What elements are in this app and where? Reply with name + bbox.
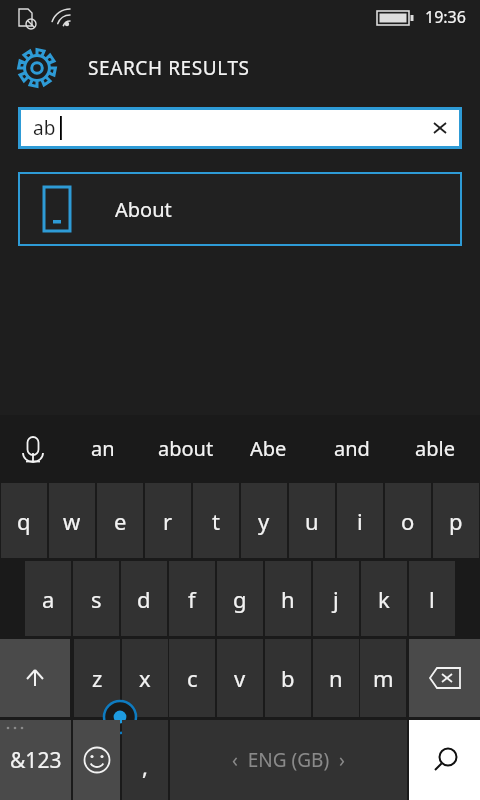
button[interactable]: y xyxy=(241,483,287,558)
button[interactable]: f xyxy=(169,561,215,636)
staticText: m xyxy=(373,663,394,693)
button[interactable]: k xyxy=(361,561,407,636)
staticText: i xyxy=(357,506,363,536)
button[interactable]: s xyxy=(73,561,119,636)
button[interactable]: u xyxy=(289,483,335,558)
staticText: About xyxy=(115,196,172,223)
staticText: about xyxy=(158,435,214,462)
button[interactable]: t xyxy=(193,483,239,558)
button[interactable]: Abe xyxy=(227,415,310,482)
button[interactable]: z xyxy=(74,639,120,717)
button[interactable]: &123 xyxy=(0,720,71,800)
staticText: p xyxy=(449,506,463,536)
staticText: n xyxy=(329,663,343,693)
button[interactable]: h xyxy=(265,561,311,636)
button[interactable]: a xyxy=(25,561,71,636)
button[interactable]: ‹ ENG (GB) › xyxy=(170,720,407,800)
button[interactable]: about xyxy=(144,415,227,482)
button[interactable]: d xyxy=(121,561,167,636)
button[interactable]: r xyxy=(145,483,191,558)
button[interactable]: c xyxy=(169,639,215,717)
button[interactable]: Backspace xyxy=(409,639,480,717)
button[interactable]: x xyxy=(122,639,168,717)
staticText: ‹ ENG (GB) › xyxy=(232,747,345,773)
staticText: c xyxy=(187,663,198,693)
button[interactable]: n xyxy=(313,639,359,717)
staticText: an xyxy=(91,435,115,462)
staticText: f xyxy=(188,584,196,614)
button[interactable]: and xyxy=(310,415,393,482)
staticText: b xyxy=(281,663,295,693)
button[interactable]: able xyxy=(393,415,476,482)
staticText: l xyxy=(429,584,435,614)
button[interactable]: w xyxy=(49,483,95,558)
button[interactable]: e xyxy=(97,483,143,558)
staticText: y xyxy=(258,506,270,536)
staticText: &123 xyxy=(10,746,62,775)
button[interactable]: ab xyxy=(21,110,459,146)
button[interactable]: Emoji xyxy=(73,720,120,800)
button[interactable]: o xyxy=(385,483,431,558)
button[interactable]: Shift xyxy=(0,639,70,717)
staticText: q xyxy=(17,506,31,536)
staticText: v xyxy=(234,663,246,693)
button[interactable]: Search xyxy=(409,720,480,800)
staticText: z xyxy=(92,663,103,693)
staticText: w xyxy=(63,506,81,536)
staticText: o xyxy=(401,506,415,536)
button[interactable]: m xyxy=(360,639,406,717)
button[interactable]: About xyxy=(20,174,460,244)
button[interactable]: p xyxy=(433,483,479,558)
staticText: x xyxy=(139,663,151,693)
staticText: t xyxy=(212,506,220,536)
staticText: d xyxy=(137,584,151,614)
staticText: e xyxy=(114,506,127,536)
staticText: and xyxy=(334,435,370,462)
button[interactable]: an xyxy=(62,415,144,482)
staticText: ab xyxy=(33,115,56,141)
staticText: 19:36 xyxy=(425,6,466,28)
button[interactable]: i xyxy=(337,483,383,558)
button[interactable]: l xyxy=(409,561,455,636)
button[interactable]: , xyxy=(122,720,168,800)
staticText: able xyxy=(415,435,455,462)
staticText: g xyxy=(233,584,247,614)
button[interactable]: v xyxy=(217,639,263,717)
staticText: s xyxy=(91,584,102,614)
staticText: h xyxy=(281,584,295,614)
staticText: r xyxy=(163,506,173,536)
staticText: , xyxy=(142,751,148,781)
button[interactable]: g xyxy=(217,561,263,636)
button[interactable]: Clear xyxy=(421,110,459,146)
staticText: a xyxy=(42,584,55,614)
staticText: j xyxy=(333,584,339,614)
staticText: Abe xyxy=(250,435,287,462)
button[interactable]: Voice input xyxy=(12,428,54,470)
button[interactable]: Settings xyxy=(14,45,60,91)
staticText: k xyxy=(378,584,390,614)
staticText: SEARCH RESULTS xyxy=(88,55,250,81)
button[interactable]: j xyxy=(313,561,359,636)
staticText: u xyxy=(305,506,319,536)
button[interactable]: b xyxy=(265,639,311,717)
button[interactable]: q xyxy=(1,483,47,558)
